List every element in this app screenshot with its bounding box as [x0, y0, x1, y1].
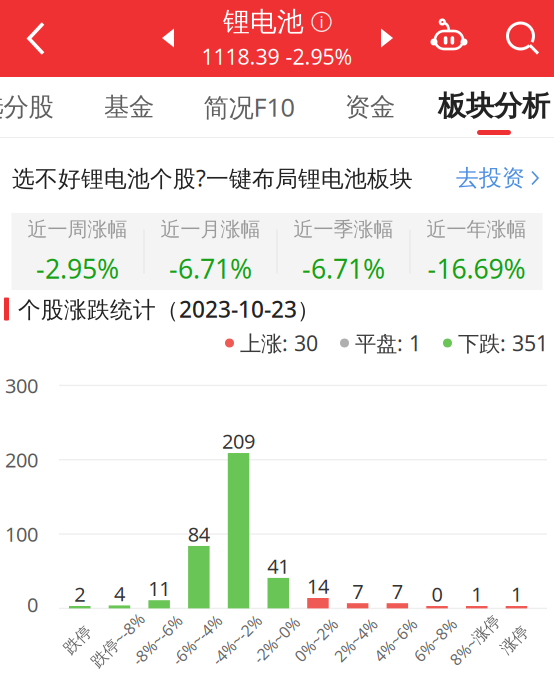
staticText: 板块分析 — [438, 89, 550, 123]
staticText: 7 — [392, 578, 403, 604]
staticText: i — [319, 11, 323, 32]
staticText: -2%~0% — [247, 629, 305, 651]
staticText: 选不好锂电池个股?一键布局锂电池板块 — [12, 163, 413, 193]
staticText: 0 — [27, 591, 38, 618]
staticText: 跌停~-8% — [83, 629, 151, 651]
staticText: 锂电池 — [223, 5, 304, 38]
staticText: 41 — [267, 553, 289, 579]
staticText: 去投资 — [456, 164, 525, 192]
staticText: -6.71% — [302, 251, 385, 286]
button[interactable]: 选分股 — [0, 78, 53, 136]
staticText: 1 — [471, 581, 482, 607]
button[interactable]: 基金 — [104, 78, 154, 136]
button[interactable]: Back — [5, 0, 67, 77]
staticText: 选分股 — [0, 91, 53, 122]
staticText: -4%~-2% — [205, 629, 268, 651]
staticText: -2.95% — [36, 251, 119, 286]
staticText: 4%~6% — [369, 629, 422, 651]
button[interactable]: 板块分析 — [434, 73, 554, 139]
staticText: 上涨: 30 — [240, 329, 318, 357]
staticText: 200 — [5, 446, 38, 473]
staticText: 平盘: 1 — [355, 329, 421, 357]
staticText: 下跌: 351 — [458, 329, 548, 357]
staticText: 0%~2% — [289, 629, 342, 651]
staticText: 14 — [307, 573, 329, 599]
staticText: 近一周涨幅 — [27, 217, 127, 242]
staticText: 近一年涨幅 — [426, 217, 526, 242]
staticText: 11 — [148, 575, 170, 601]
button[interactable]: Next sector — [366, 0, 408, 76]
staticText: 资金 — [345, 91, 395, 122]
staticText: 7 — [352, 578, 363, 604]
staticText: 1 — [511, 581, 522, 607]
staticText: 跌停 — [62, 630, 94, 650]
staticText: 简况F10 — [203, 90, 294, 124]
button[interactable]: Previous sector — [147, 0, 189, 76]
staticText: 300 — [5, 372, 38, 399]
staticText: 个股涨跌统计（2023-10-23） — [18, 294, 320, 324]
staticText: 8%~涨停 — [443, 629, 506, 651]
staticText: 6%~8% — [409, 629, 462, 651]
button[interactable]: AI assistant — [421, 0, 477, 75]
button[interactable]: Search — [495, 0, 551, 77]
staticText: 基金 — [104, 91, 154, 122]
staticText: 近一季涨幅 — [293, 217, 393, 242]
staticText: 4 — [114, 580, 125, 607]
staticText: 近一月涨幅 — [160, 217, 260, 242]
staticText: 2 — [74, 581, 85, 607]
staticText: 1118.39 -2.95% — [201, 42, 352, 70]
staticText: -6%~-4% — [165, 629, 228, 651]
staticText: 209 — [222, 428, 255, 454]
staticText: 100 — [5, 521, 38, 547]
staticText: -8%~-6% — [126, 629, 189, 651]
staticText: 涨停 — [498, 630, 530, 650]
staticText: -6.71% — [169, 251, 252, 286]
staticText: 0 — [432, 581, 443, 607]
button[interactable]: 资金 — [345, 78, 395, 136]
button[interactable]: 去投资 — [456, 143, 540, 213]
button[interactable]: 简况F10 — [203, 78, 294, 136]
staticText: 2%~4% — [329, 629, 382, 651]
staticText: 84 — [188, 521, 210, 547]
staticText: -16.69% — [427, 251, 525, 286]
